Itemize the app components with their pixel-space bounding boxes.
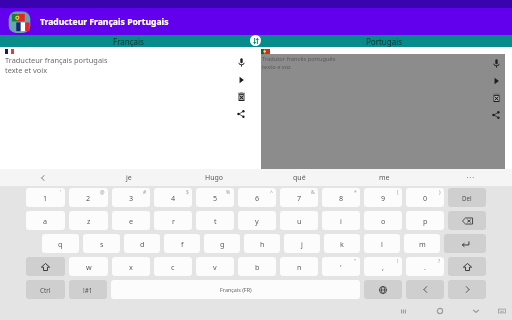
button[interactable]: left (406, 280, 444, 299)
button[interactable]: Home (432, 303, 448, 319)
button[interactable]: i (322, 211, 360, 230)
button[interactable]: ' (322, 257, 360, 276)
staticText: 1 (43, 193, 48, 203)
button[interactable]: 9 (364, 188, 402, 207)
staticText: e (129, 216, 134, 226)
button[interactable]: o (364, 211, 402, 230)
button[interactable]: q (42, 234, 79, 253)
button[interactable]: me (342, 169, 427, 186)
button[interactable]: h (244, 234, 280, 253)
button[interactable]: 5 (196, 188, 234, 207)
button[interactable]: x (112, 257, 150, 276)
button[interactable]: Ctrl (26, 280, 65, 299)
button[interactable]: More options (427, 169, 512, 186)
button[interactable]: . (406, 257, 444, 276)
staticText: d (140, 239, 145, 249)
staticText: ' (60, 189, 62, 196)
button[interactable]: 0 (406, 188, 444, 207)
staticText: r (172, 216, 175, 226)
button[interactable]: Share (489, 106, 503, 123)
button[interactable]: Play audio (489, 72, 503, 89)
staticText: t (214, 216, 217, 226)
button[interactable]: v (196, 257, 234, 276)
button[interactable]: p (406, 211, 444, 230)
button[interactable]: Voice input (234, 54, 248, 71)
button[interactable]: enter (444, 234, 486, 253)
button[interactable]: je (86, 169, 172, 186)
button[interactable]: y (238, 211, 276, 230)
staticText: 0 (423, 193, 428, 203)
staticText: je (126, 173, 132, 183)
staticText: w (86, 262, 92, 272)
button[interactable]: d (124, 234, 160, 253)
button[interactable]: Change keyboard (494, 303, 510, 319)
staticText: texto e voz (262, 63, 291, 71)
button[interactable]: a (26, 211, 65, 230)
staticText: x (129, 262, 133, 272)
button[interactable]: u (280, 211, 318, 230)
button[interactable]: App icon (8, 10, 31, 33)
staticText: 3 (129, 193, 134, 203)
button[interactable]: c (154, 257, 192, 276)
button[interactable]: f (164, 234, 200, 253)
staticText: m (419, 239, 426, 249)
staticText: ) (439, 189, 441, 196)
button[interactable]: Del (448, 188, 486, 207)
staticText: c (171, 262, 175, 272)
staticText: 2 (86, 193, 91, 203)
button[interactable]: k (324, 234, 360, 253)
button[interactable]: e (112, 211, 150, 230)
button[interactable]: Clear text (234, 88, 248, 105)
staticText: % (226, 189, 231, 196)
button[interactable]: Recent apps (395, 303, 411, 319)
button[interactable]: z (69, 211, 108, 230)
button[interactable]: qué (257, 169, 342, 186)
button[interactable]: globe (364, 280, 402, 299)
button[interactable]: g (204, 234, 240, 253)
staticText: l (381, 239, 383, 249)
button[interactable]: w (69, 257, 108, 276)
staticText: g (220, 239, 225, 249)
staticText: z (87, 216, 91, 226)
button[interactable]: Play audio (234, 71, 248, 88)
button[interactable]: 8 (322, 188, 360, 207)
staticText: & (311, 189, 315, 196)
button[interactable]: backspace (448, 211, 486, 230)
button[interactable]: 3 (112, 188, 150, 207)
button[interactable]: Hugo (172, 169, 257, 186)
button[interactable]: n (280, 257, 318, 276)
button[interactable]: j (284, 234, 320, 253)
button[interactable]: Share (234, 105, 248, 122)
button[interactable]: right (448, 280, 486, 299)
staticText: v (213, 262, 217, 272)
button[interactable]: r (154, 211, 192, 230)
button[interactable]: Previous suggestions (0, 169, 86, 186)
button[interactable]: Portugais (256, 35, 512, 47)
button[interactable]: Clear text (489, 89, 503, 106)
button[interactable]: s (83, 234, 120, 253)
button[interactable]: m (404, 234, 440, 253)
staticText: Ctrl (40, 286, 51, 294)
staticText: a (43, 216, 48, 226)
button[interactable]: Français (0, 35, 256, 47)
button[interactable]: 1 (26, 188, 65, 207)
button[interactable]: 4 (154, 188, 192, 207)
staticText: # (143, 189, 147, 196)
button[interactable]: 6 (238, 188, 276, 207)
button[interactable]: b (238, 257, 276, 276)
button[interactable]: l (364, 234, 400, 253)
button[interactable]: Voice input (489, 55, 503, 72)
button[interactable]: shift (448, 257, 486, 276)
button[interactable]: t (196, 211, 234, 230)
button[interactable]: Français (FR) (111, 280, 360, 299)
button[interactable]: !#1 (69, 280, 107, 299)
button[interactable]: 7 (280, 188, 318, 207)
button[interactable]: , (364, 257, 402, 276)
button[interactable]: Hide keyboard (468, 303, 484, 319)
staticText: b (255, 262, 260, 272)
button[interactable]: Swap languages (250, 35, 261, 46)
staticText: 8 (339, 193, 344, 203)
button[interactable]: 2 (69, 188, 108, 207)
button[interactable]: shift (26, 257, 65, 276)
staticText: @ (100, 189, 105, 196)
